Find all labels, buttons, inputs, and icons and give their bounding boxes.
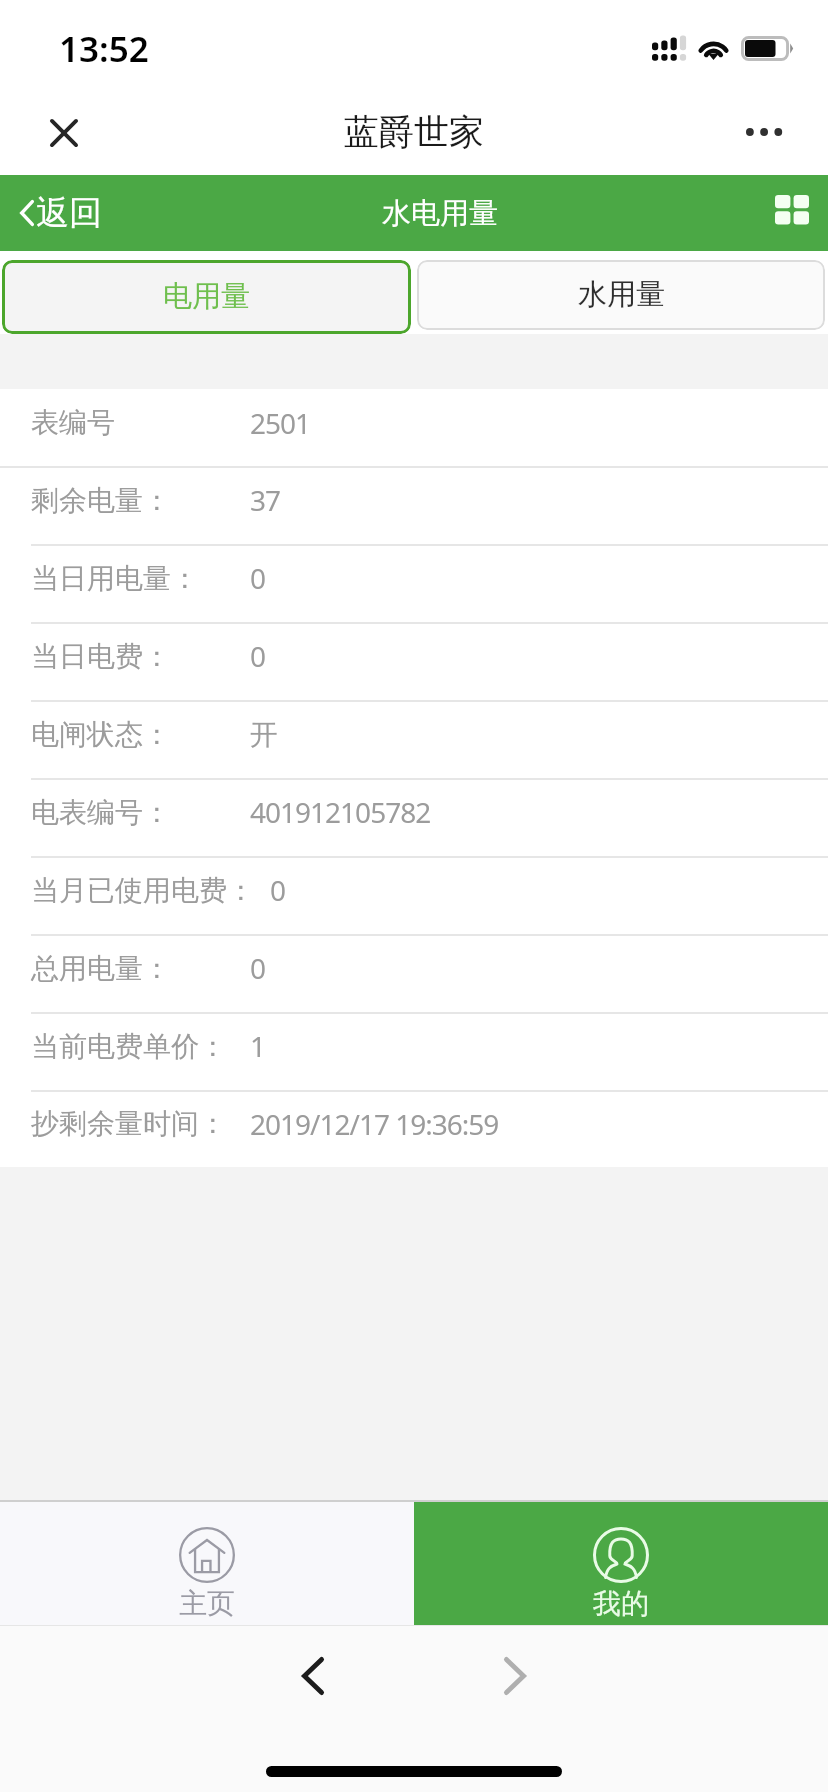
staticText: 当日电费： <box>31 639 171 674</box>
button[interactable]: Back <box>267 1643 359 1709</box>
staticText: 我的 <box>593 1586 649 1621</box>
button[interactable]: 当日电费： <box>0 622 828 700</box>
staticText: 1 <box>250 1027 266 1065</box>
staticText: 电用量 <box>163 278 250 315</box>
button[interactable]: 抄剩余量时间： <box>0 1090 828 1167</box>
staticText: 水用量 <box>578 276 665 313</box>
button[interactable]: 当日用电量： <box>0 544 828 622</box>
staticText: 水电用量 <box>382 195 498 232</box>
staticText: 2019/12/17 19:36:59 <box>250 1105 499 1143</box>
staticText: 401912105782 <box>250 793 431 831</box>
staticText: 37 <box>250 481 281 519</box>
button[interactable]: Forward <box>469 1643 561 1709</box>
staticText: 抄剩余量时间： <box>31 1106 227 1141</box>
button[interactable]: 主页 <box>0 1502 414 1625</box>
button[interactable]: Grid menu <box>767 188 817 238</box>
staticText: 13:52 <box>59 25 149 73</box>
button[interactable]: 表编号 <box>0 389 828 466</box>
staticText: 开 <box>250 717 277 752</box>
button[interactable]: 电表编号： <box>0 778 828 856</box>
button[interactable]: 总用电量： <box>0 934 828 1012</box>
button[interactable]: 剩余电量： <box>0 466 828 544</box>
button[interactable]: 我的 <box>414 1502 828 1625</box>
staticText: 0 <box>250 637 266 675</box>
staticText: 0 <box>270 871 286 909</box>
staticText: 当月已使用电费： <box>31 873 255 908</box>
button[interactable]: 返回 <box>20 192 102 234</box>
button[interactable]: 当月已使用电费： <box>0 856 828 934</box>
button[interactable]: 电用量 <box>2 260 411 334</box>
button[interactable]: 当前电费单价： <box>0 1012 828 1090</box>
staticText: 蓝爵世家 <box>344 110 484 154</box>
staticText: 电闸状态： <box>31 717 171 752</box>
staticText: 电表编号： <box>31 795 171 830</box>
staticText: 总用电量： <box>31 951 171 986</box>
button[interactable]: More options <box>736 104 792 160</box>
staticText: 0 <box>250 949 266 987</box>
staticText: 当日用电量： <box>31 561 199 596</box>
staticText: 表编号 <box>31 405 115 440</box>
button[interactable]: Close <box>34 103 94 163</box>
staticText: 返回 <box>36 192 102 234</box>
staticText: 主页 <box>179 1586 235 1621</box>
button[interactable]: 电闸状态： <box>0 700 828 778</box>
staticText: 当前电费单价： <box>31 1029 227 1064</box>
button[interactable]: 水用量 <box>417 260 825 330</box>
staticText: 0 <box>250 559 266 597</box>
staticText: 剩余电量： <box>31 483 171 518</box>
staticText: 2501 <box>250 404 311 442</box>
